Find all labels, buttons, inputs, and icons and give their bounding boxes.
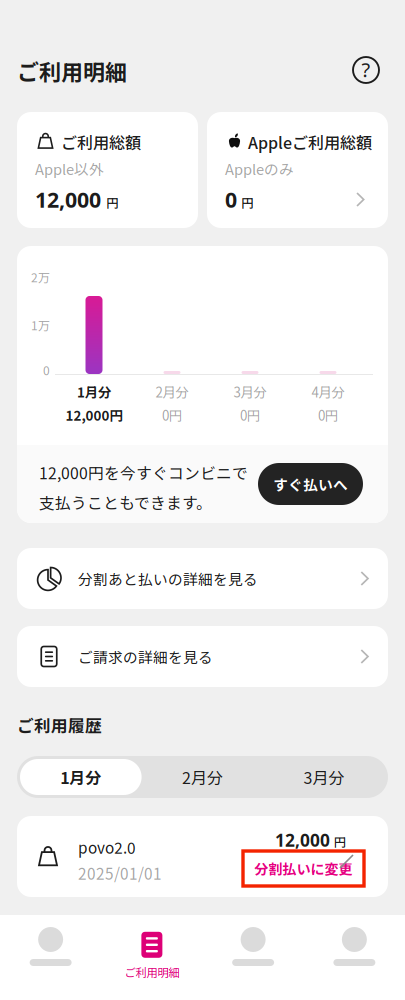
- staticText: 12,000円: [65, 405, 122, 425]
- staticText: 2月分: [155, 382, 188, 401]
- staticText: 12,000: [35, 185, 101, 214]
- button[interactable]: 分割あと払いの詳細を見る: [17, 548, 388, 609]
- button[interactable]: ご利用総額: [17, 112, 198, 228]
- staticText: povo2.0: [78, 836, 136, 858]
- button[interactable]: 分割払いに変更: [243, 851, 364, 886]
- staticText: 0: [43, 361, 50, 379]
- staticText: 3月分: [303, 765, 344, 789]
- staticText: ご利用明細: [17, 55, 127, 87]
- staticText: 0円: [318, 405, 338, 425]
- button[interactable]: メニュー4: [304, 927, 405, 984]
- button[interactable]: ご利用明細: [101, 931, 202, 980]
- staticText: 1月分: [60, 765, 101, 789]
- staticText: 4月分: [311, 382, 344, 401]
- staticText: 円: [241, 193, 254, 211]
- staticText: 0円: [240, 405, 260, 425]
- button[interactable]: ご請求の詳細を見る: [17, 626, 388, 687]
- staticText: Apple以外: [35, 158, 104, 179]
- staticText: ご利用総額: [61, 130, 141, 154]
- staticText: ご利用履歴: [17, 713, 102, 737]
- staticText: 12,000円を今すぐコンビニで 支払うこともできます。: [39, 461, 248, 514]
- button[interactable]: メニュー3: [202, 927, 304, 984]
- button[interactable]: 1月分: [20, 759, 142, 795]
- button[interactable]: ホーム: [0, 927, 101, 984]
- staticText: ?: [361, 56, 370, 83]
- staticText: Appleのみ: [225, 158, 294, 179]
- staticText: ご利用明細: [124, 964, 179, 980]
- staticText: 1月分: [77, 382, 111, 401]
- staticText: 2025/01/01: [78, 862, 162, 884]
- button[interactable]: 3月分: [263, 759, 385, 795]
- staticText: 0円: [162, 405, 182, 425]
- staticText: 円: [106, 193, 119, 211]
- staticText: 分割あと払いの詳細を見る: [78, 568, 258, 589]
- staticText: Appleご利用総額: [248, 130, 372, 154]
- staticText: 2万: [31, 268, 50, 286]
- staticText: 0: [225, 185, 237, 214]
- staticText: ご請求の詳細を見る: [78, 646, 213, 667]
- button[interactable]: すぐ払いへ: [258, 463, 363, 505]
- staticText: 分割払いに変更: [254, 858, 352, 879]
- button[interactable]: ヘルプ: [353, 57, 379, 83]
- staticText: 円: [334, 833, 346, 850]
- staticText: 3月分: [233, 382, 266, 401]
- staticText: 12,000: [275, 828, 330, 851]
- staticText: 2月分: [182, 765, 223, 789]
- staticText: すぐ払いへ: [273, 473, 348, 495]
- staticText: 1万: [31, 316, 50, 334]
- button[interactable]: Appleご利用総額: [207, 112, 388, 228]
- button[interactable]: 2月分: [142, 759, 263, 795]
